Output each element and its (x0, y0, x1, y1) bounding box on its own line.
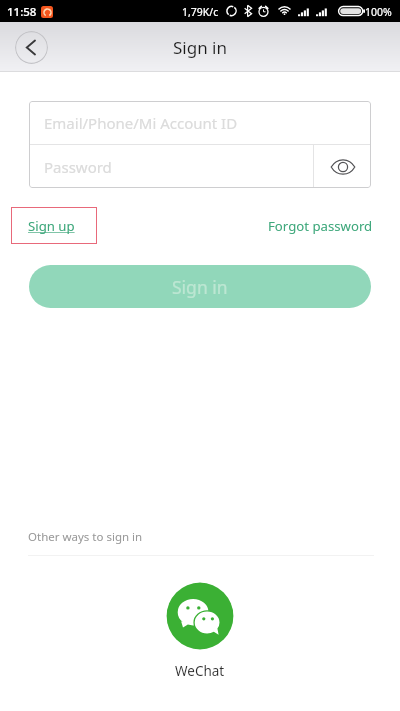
staticText: 11:58 (7, 4, 37, 20)
button[interactable]: Back (15, 31, 48, 64)
staticText: Sign up (28, 217, 75, 235)
staticText: 100% (365, 5, 392, 19)
staticText: WeChat (175, 662, 225, 680)
button[interactable]: Email/Phone/Mi Account ID (29, 101, 371, 144)
button[interactable]: Sign up (11, 207, 97, 244)
staticText: Password (44, 157, 112, 177)
button[interactable]: Sign in (29, 265, 371, 308)
staticText: Forgot password (268, 217, 373, 235)
button[interactable]: Forgot password (268, 217, 373, 235)
staticText: Sign in (172, 275, 228, 299)
button[interactable]: Sign in with WeChat (166, 582, 234, 650)
staticText: 1,79K/c (182, 5, 219, 19)
staticText: Sign in (173, 36, 227, 59)
staticText: Email/Phone/Mi Account ID (44, 113, 238, 133)
staticText: Other ways to sign in (28, 529, 143, 545)
button[interactable]: Show password (314, 145, 371, 188)
